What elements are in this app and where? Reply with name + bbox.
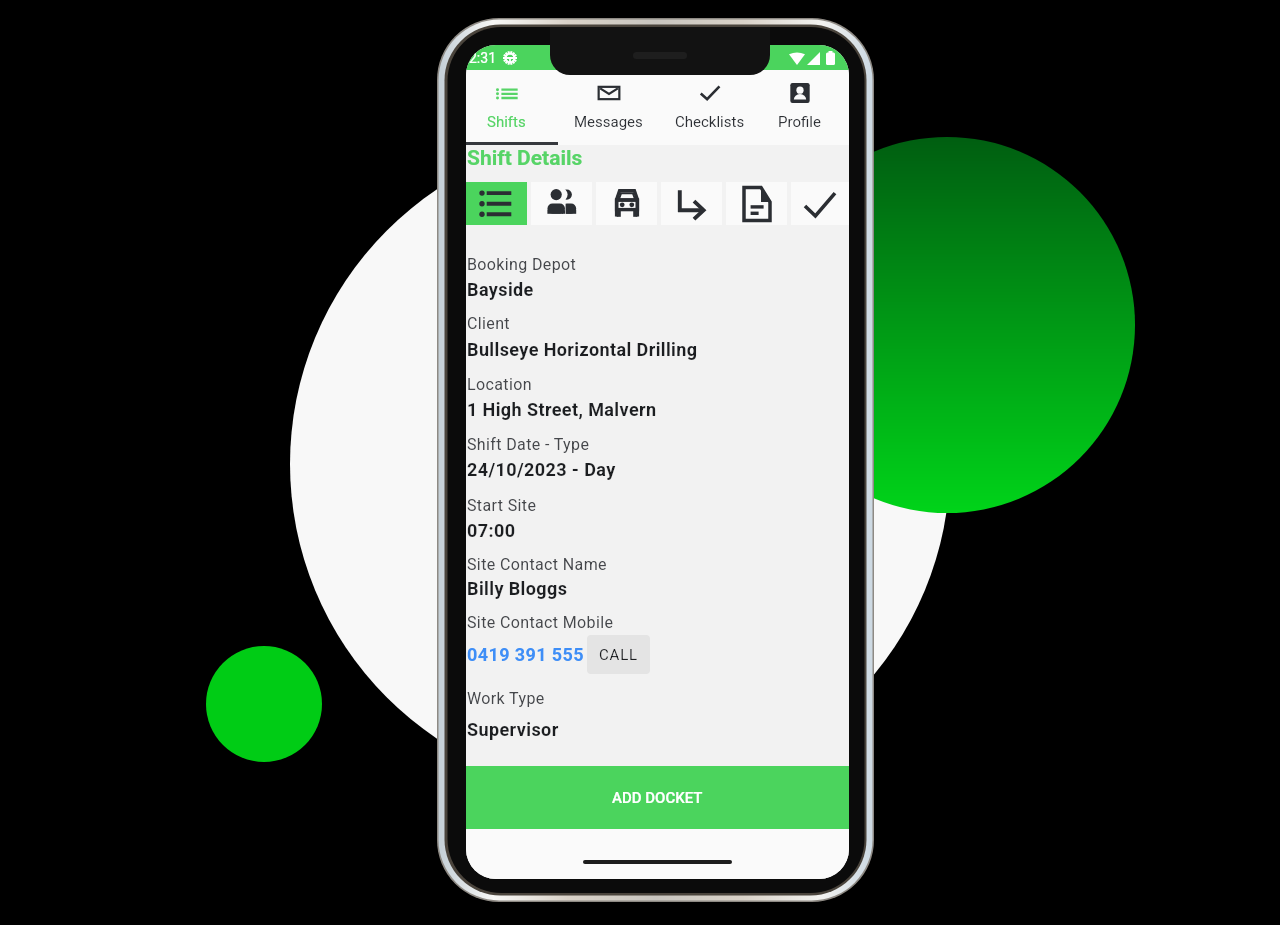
button[interactable]: Messages	[557, 70, 659, 145]
staticText: 24/10/2023 - Day	[467, 459, 616, 480]
staticText: Shift Date - Type	[467, 435, 590, 454]
staticText: 2:31	[469, 50, 496, 66]
staticText: CALL	[599, 646, 638, 664]
button[interactable]: Vehicle	[596, 182, 657, 225]
staticText: Start Site	[467, 496, 537, 515]
staticText: Supervisor	[467, 719, 559, 740]
button[interactable]: ADD DOCKET	[466, 766, 849, 829]
staticText: ADD DOCKET	[612, 789, 703, 807]
staticText: Checklists	[675, 113, 745, 131]
staticText: Shifts	[487, 113, 526, 131]
staticText: Client	[467, 314, 510, 333]
staticText: Shift Details	[467, 146, 583, 171]
staticText: 1 High Street, Malvern	[467, 399, 657, 420]
staticText: Booking Depot	[467, 255, 577, 274]
button[interactable]: CALL	[587, 635, 650, 674]
button[interactable]: Travel	[661, 182, 722, 225]
staticText: Billy Bloggs	[467, 578, 568, 599]
staticText: Bullseye Horizontal Drilling	[467, 339, 698, 360]
button[interactable]: Checklists	[659, 70, 761, 145]
button[interactable]: Profile	[761, 70, 838, 145]
button[interactable]: Crew	[531, 182, 592, 225]
staticText: 07:00	[467, 520, 516, 541]
staticText: Location	[467, 375, 532, 394]
staticText: Bayside	[467, 279, 534, 300]
staticText: Site Contact Mobile	[467, 613, 614, 632]
button[interactable]: Documents	[726, 182, 787, 225]
staticText: Messages	[574, 113, 643, 131]
staticText: Profile	[778, 113, 821, 131]
button[interactable]: Shifts	[466, 70, 557, 145]
staticText: Work Type	[467, 689, 545, 708]
button[interactable]: Details	[466, 182, 527, 225]
staticText: Site Contact Name	[467, 555, 607, 574]
button[interactable]: 0419 391 555	[467, 644, 585, 665]
button[interactable]: Complete	[791, 182, 849, 225]
